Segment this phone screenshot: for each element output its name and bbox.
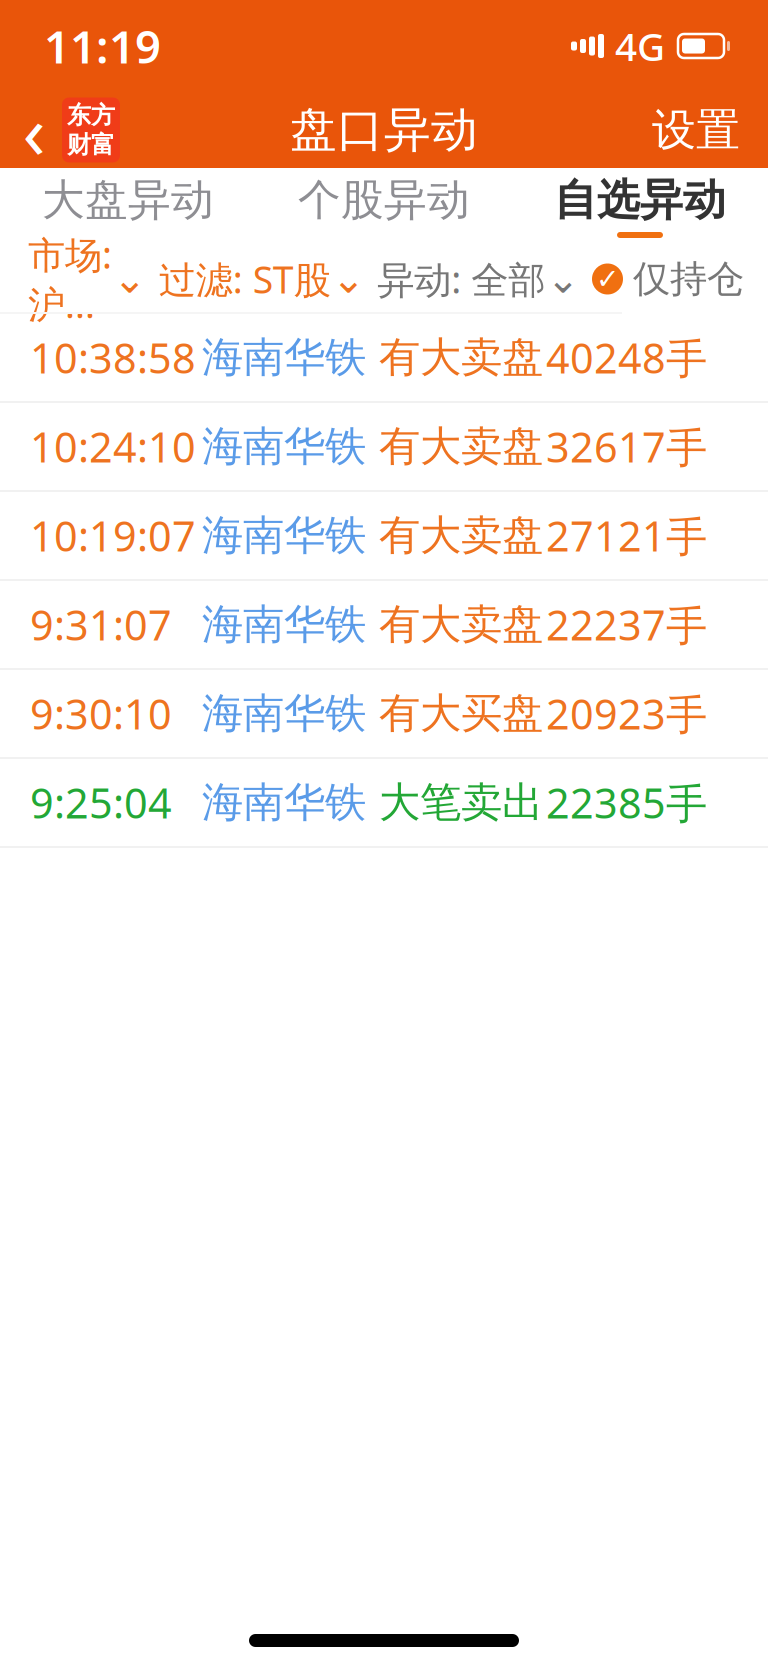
staticText: 设置: [652, 103, 740, 157]
staticText: 海南华铁: [202, 332, 366, 383]
staticText: 仅持仓: [633, 256, 744, 302]
staticText: 海南华铁: [202, 510, 366, 561]
button[interactable]: 过滤: ST股: [159, 246, 361, 312]
button[interactable]: 10:24:10: [0, 403, 768, 492]
staticText: 10:19:07: [30, 508, 196, 563]
staticText: ✓: [596, 263, 619, 295]
staticText: 有大买盘: [379, 688, 543, 739]
staticText: 4G: [615, 20, 665, 72]
button[interactable]: 9:30:10: [0, 670, 768, 759]
staticText: 东方: [67, 100, 115, 130]
staticText: ⌄: [546, 256, 580, 302]
staticText: 32617手: [546, 419, 707, 474]
button[interactable]: 返回东方财富: [0, 89, 120, 170]
staticText: 海南华铁: [202, 421, 366, 472]
staticText: 40248手: [546, 330, 707, 385]
staticText: 10:24:10: [30, 419, 196, 474]
button[interactable]: 大盘异动: [0, 168, 256, 246]
button[interactable]: 9:25:04: [0, 759, 768, 848]
staticText: 20923手: [546, 686, 707, 741]
staticText: ‹: [22, 80, 45, 180]
staticText: 9:31:07: [30, 597, 172, 652]
button[interactable]: 10:19:07: [0, 492, 768, 581]
staticText: 22385手: [546, 775, 707, 830]
button[interactable]: 9:31:07: [0, 581, 768, 670]
staticText: 过滤: ST股: [159, 254, 331, 304]
staticText: 财富: [67, 130, 115, 159]
staticText: 22237手: [546, 597, 707, 652]
staticText: 大笔卖出: [379, 777, 543, 828]
button[interactable]: 10:38:58: [0, 314, 768, 403]
button[interactable]: 个股异动: [256, 168, 512, 246]
staticText: 海南华铁: [202, 599, 366, 650]
staticText: 盘口异动: [290, 101, 478, 159]
button[interactable]: 异动: 全部: [377, 246, 575, 312]
staticText: 11:19: [44, 16, 161, 76]
staticText: 海南华铁: [202, 688, 366, 739]
staticText: 9:25:04: [30, 775, 172, 830]
staticText: 有大卖盘: [379, 332, 543, 383]
staticText: 有大卖盘: [379, 599, 543, 650]
button[interactable]: 设置: [652, 91, 768, 169]
staticText: 有大卖盘: [379, 510, 543, 561]
staticText: 自选异动: [554, 174, 726, 226]
staticText: 有大卖盘: [379, 421, 543, 472]
staticText: 10:38:58: [30, 330, 196, 385]
staticText: 9:30:10: [30, 686, 172, 741]
staticText: 27121手: [546, 508, 707, 563]
staticText: ⌄: [332, 256, 366, 302]
staticText: 大盘异动: [42, 174, 214, 226]
staticText: 个股异动: [298, 174, 470, 226]
staticText: 市场: 沪...: [28, 229, 112, 329]
staticText: 异动: 全部: [377, 254, 545, 304]
button[interactable]: 自选异动: [512, 168, 768, 246]
staticText: 海南华铁: [202, 777, 366, 828]
button[interactable]: ✓: [592, 248, 744, 310]
staticText: ⌄: [113, 256, 147, 302]
button[interactable]: 市场: 沪...: [28, 221, 142, 337]
